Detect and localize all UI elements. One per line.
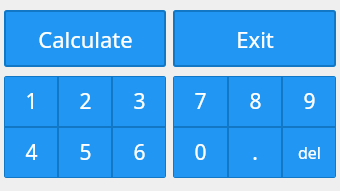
button[interactable]: 7 bbox=[173, 76, 228, 127]
button[interactable]: del bbox=[282, 127, 336, 178]
staticText: 1 bbox=[25, 87, 38, 116]
staticText: del bbox=[298, 142, 321, 164]
staticText: 2 bbox=[79, 87, 92, 116]
staticText: 8 bbox=[249, 87, 262, 116]
staticText: 0 bbox=[194, 138, 207, 167]
button[interactable]: 0 bbox=[173, 127, 228, 178]
staticText: 6 bbox=[133, 138, 146, 167]
staticText: 5 bbox=[79, 138, 92, 167]
staticText: 9 bbox=[303, 87, 316, 116]
staticText: 4 bbox=[25, 138, 38, 167]
staticText: 3 bbox=[133, 87, 146, 116]
button[interactable]: 9 bbox=[282, 76, 336, 127]
button[interactable]: 5 bbox=[58, 127, 112, 178]
button[interactable]: 2 bbox=[58, 76, 112, 127]
button[interactable]: 8 bbox=[228, 76, 282, 127]
button[interactable]: 6 bbox=[112, 127, 166, 178]
button[interactable]: 3 bbox=[112, 76, 166, 127]
staticText: Calculate bbox=[38, 24, 133, 54]
button[interactable]: . bbox=[228, 127, 282, 178]
staticText: Exit bbox=[236, 24, 274, 54]
button[interactable]: Exit bbox=[173, 10, 336, 67]
button[interactable]: 1 bbox=[4, 76, 58, 127]
button[interactable]: 4 bbox=[4, 127, 58, 178]
staticText: . bbox=[252, 138, 258, 167]
button[interactable]: Calculate bbox=[4, 10, 166, 67]
staticText: 7 bbox=[194, 87, 207, 116]
